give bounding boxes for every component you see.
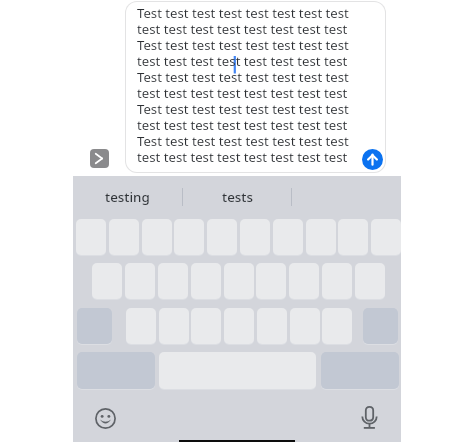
staticText: Test test test test test test test test … — [137, 4, 349, 166]
staticText: testing — [105, 188, 150, 206]
button[interactable]: Send — [362, 149, 383, 170]
button[interactable]: Voice input — [357, 404, 380, 430]
staticText: tests — [222, 188, 253, 206]
button[interactable]: testing — [73, 176, 182, 218]
button[interactable]: Test test test test test test test test … — [126, 2, 385, 172]
button[interactable]: Emoji — [95, 408, 116, 429]
button[interactable]: tests — [183, 176, 291, 218]
button[interactable]: Show more options — [90, 149, 109, 168]
